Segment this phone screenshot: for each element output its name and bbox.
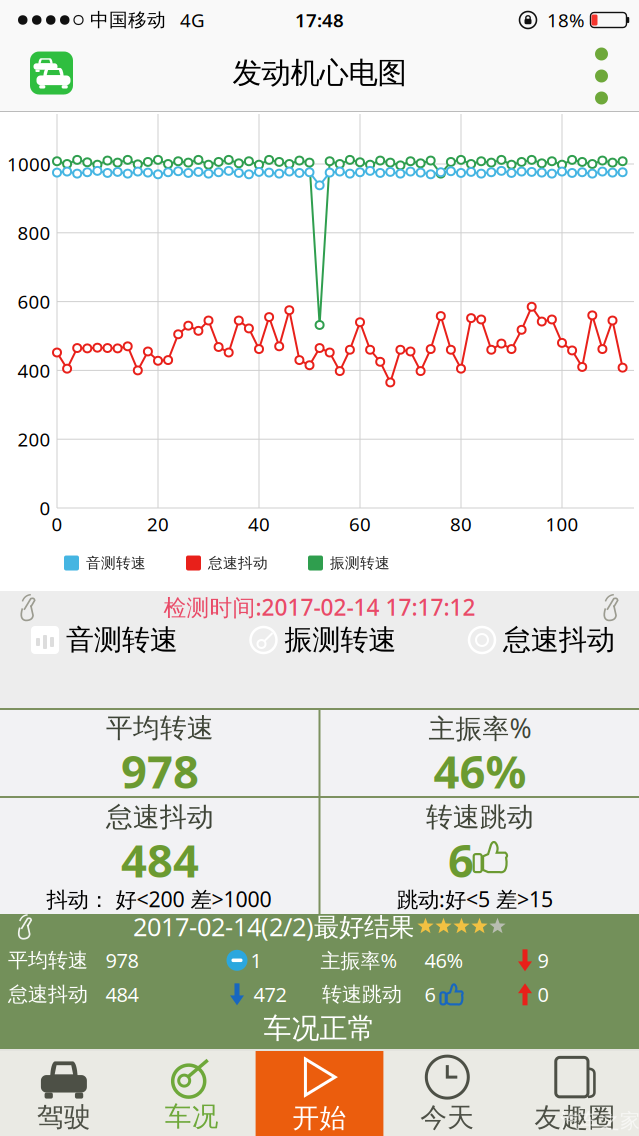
staticText: 600 xyxy=(17,289,50,314)
staticText: 抖动： 好<200 差>1000 xyxy=(46,885,271,913)
button[interactable]: 更多 xyxy=(595,47,639,104)
button[interactable]: 车辆 xyxy=(30,54,73,97)
staticText: 4G xyxy=(180,8,205,32)
staticText: 1 xyxy=(250,947,261,974)
staticText: 6 xyxy=(448,830,474,890)
staticText: 9 xyxy=(537,947,548,974)
staticText: 484 xyxy=(121,830,199,890)
staticText: 主振率% xyxy=(428,710,531,746)
staticText: 18% xyxy=(547,8,585,32)
staticText: 怠速抖动 xyxy=(503,623,615,657)
staticText: 检测时间:2017-02-14 17:17:12 xyxy=(163,592,475,622)
staticText: 0 xyxy=(39,496,50,520)
staticText: 车况正常 xyxy=(263,1011,375,1046)
button[interactable]: 今天 xyxy=(383,1051,511,1136)
staticText: 主振率% xyxy=(320,947,397,974)
button[interactable]: 开始 xyxy=(256,1051,383,1136)
staticText: 80 xyxy=(450,512,472,536)
staticText: 200 xyxy=(17,427,50,452)
staticText: 发动机心电图 xyxy=(232,55,406,91)
staticText: 0 xyxy=(537,981,548,1008)
staticText: 怠速抖动 xyxy=(208,554,268,572)
button[interactable]: 音测转速 xyxy=(30,623,178,657)
staticText: 振测转速 xyxy=(284,623,396,657)
staticText: 978 xyxy=(121,741,199,801)
staticText: 800 xyxy=(17,220,50,245)
staticText: 2017-02-14(2/2)最好结果 xyxy=(133,909,414,943)
staticText: 开始 xyxy=(292,1102,346,1134)
staticText: 友趣圈 xyxy=(535,1101,616,1134)
staticText: 今天 xyxy=(420,1101,474,1134)
staticText: 20 xyxy=(147,512,169,536)
staticText: 驾驶 xyxy=(37,1101,91,1133)
staticText: 60 xyxy=(349,512,371,536)
staticText: 0 xyxy=(51,512,62,536)
staticText: 40 xyxy=(248,512,270,536)
staticText: 平均转速 xyxy=(8,948,88,973)
staticText: 转速跳动 xyxy=(322,982,402,1007)
button[interactable]: 怠速抖动 xyxy=(467,623,615,657)
staticText: 978 xyxy=(105,947,138,974)
staticText: 转速跳动 xyxy=(426,801,534,833)
button[interactable]: 车况 xyxy=(128,1051,256,1136)
staticText: 484 xyxy=(105,981,138,1008)
staticText: 汽车之家 xyxy=(560,1109,639,1133)
staticText: 17:48 xyxy=(295,8,344,32)
staticText: 音测转速 xyxy=(66,623,178,657)
staticText: 振测转速 xyxy=(330,554,390,572)
staticText: 46% xyxy=(424,947,463,974)
button[interactable]: 驾驶 xyxy=(0,1051,128,1136)
staticText: 车况 xyxy=(165,1100,219,1133)
staticText: 6 xyxy=(424,981,435,1008)
staticText: 472 xyxy=(253,981,286,1008)
staticText: 怠速抖动 xyxy=(106,801,214,833)
staticText: 46% xyxy=(433,741,526,801)
staticText: 400 xyxy=(17,358,50,383)
staticText: 中国移动 xyxy=(90,8,166,31)
button[interactable]: 友趣圈 xyxy=(511,1051,639,1136)
staticText: 平均转速 xyxy=(106,712,214,744)
staticText: 怠速抖动 xyxy=(8,982,88,1007)
staticText: 跳动:好<5 差>15 xyxy=(397,885,553,913)
staticText: 100 xyxy=(545,512,578,536)
staticText: 1000 xyxy=(7,152,51,176)
staticText: 音测转速 xyxy=(86,554,146,572)
button[interactable]: 振测转速 xyxy=(248,623,396,657)
